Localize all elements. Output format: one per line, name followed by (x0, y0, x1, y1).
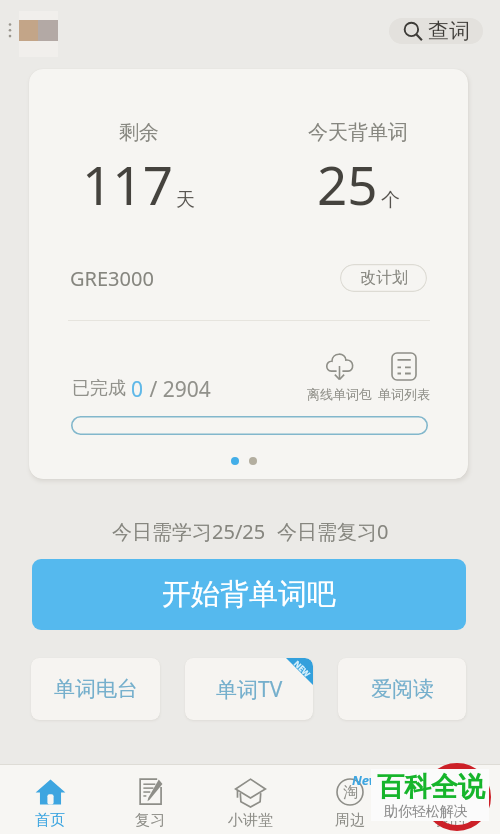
button[interactable]: 爱阅读 (338, 658, 466, 720)
button[interactable]: 离线单词包 (303, 352, 375, 402)
staticText: 助你轻松解决 (384, 803, 468, 821)
other: 离线单词包 (325, 352, 354, 381)
button[interactable]: 小讲堂 (200, 765, 300, 834)
button[interactable]: 开始背单词吧 (32, 559, 466, 630)
staticText: 首页 (35, 811, 65, 830)
staticText: 25 (317, 148, 378, 220)
staticText: 今天背单词 (308, 120, 408, 145)
staticText: 小讲堂 (228, 811, 273, 830)
button[interactable]: 复习 (100, 765, 200, 834)
staticText: 复习 (135, 811, 165, 830)
button[interactable]: Banner (19, 11, 58, 57)
staticText: 爱阅读 (371, 676, 434, 702)
staticText: 周边 (335, 811, 365, 830)
staticText: 单词TV (216, 675, 283, 704)
staticText: 查词 (428, 18, 470, 44)
button[interactable]: 单词TV (185, 658, 313, 720)
staticText: 117 (82, 148, 173, 220)
button[interactable]: 改计划 (340, 264, 427, 292)
staticText: 个 (381, 188, 400, 212)
button[interactable]: 单词列表 (374, 352, 434, 402)
button[interactable]: 查词 Search word (389, 18, 483, 44)
staticText: 已完成 (72, 375, 131, 397)
staticText: 天 (176, 188, 195, 212)
staticText: 单词电台 (54, 676, 138, 702)
staticText: NEW (292, 658, 313, 679)
button[interactable]: 首页 (0, 765, 100, 834)
staticText: GRE3000 (70, 265, 154, 292)
staticText: 改计划 (360, 268, 408, 288)
staticText: 开始背单词吧 (162, 576, 336, 613)
button[interactable]: 我的 (400, 765, 500, 834)
other: 单词列表 (391, 352, 417, 381)
staticText: 离线单词包 (307, 386, 372, 402)
staticText: / 2904 (144, 375, 211, 397)
staticText: 剩余 (119, 120, 159, 145)
staticText: 我的 (435, 811, 465, 830)
button[interactable]: More options (4, 18, 19, 42)
staticText: 今日需学习25/25 (112, 518, 266, 545)
staticText: 淘 (343, 783, 358, 802)
button[interactable]: 淘 (300, 765, 400, 834)
staticText: 百科全说 (377, 770, 485, 804)
staticText: New (352, 771, 380, 789)
staticText: 今日需复习0 (277, 518, 389, 545)
staticText: 单词列表 (378, 386, 430, 402)
button[interactable]: 单词电台 (31, 658, 160, 720)
staticText: 0 (131, 375, 144, 397)
